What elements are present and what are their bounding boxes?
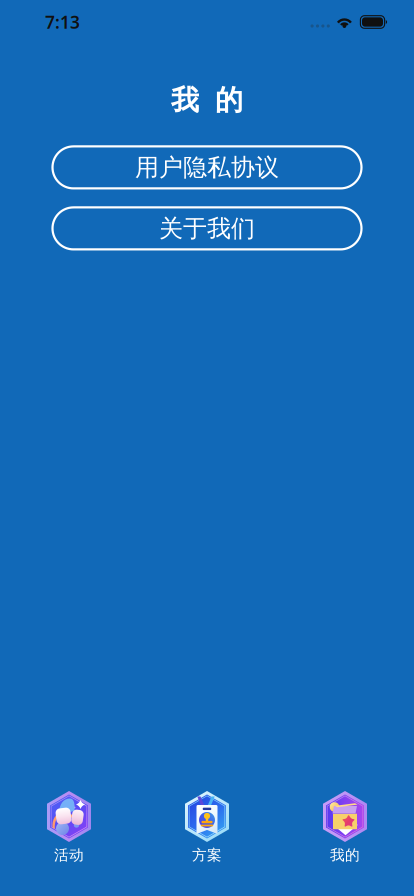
staticText: 我的 <box>330 846 360 864</box>
button[interactable]: 活动 <box>0 791 138 864</box>
staticText: 我 的 <box>171 83 243 117</box>
button[interactable]: 方案 <box>138 791 276 864</box>
staticText: 活动 <box>54 846 84 864</box>
staticText: 关于我们 <box>159 214 255 243</box>
staticText: 用户隐私协议 <box>135 153 279 182</box>
button[interactable]: 用户隐私协议 <box>52 146 361 188</box>
staticText: 7:13 <box>45 10 80 33</box>
button[interactable]: 我的 <box>276 791 414 864</box>
staticText: 方案 <box>192 846 222 864</box>
button[interactable]: 关于我们 <box>52 207 361 249</box>
